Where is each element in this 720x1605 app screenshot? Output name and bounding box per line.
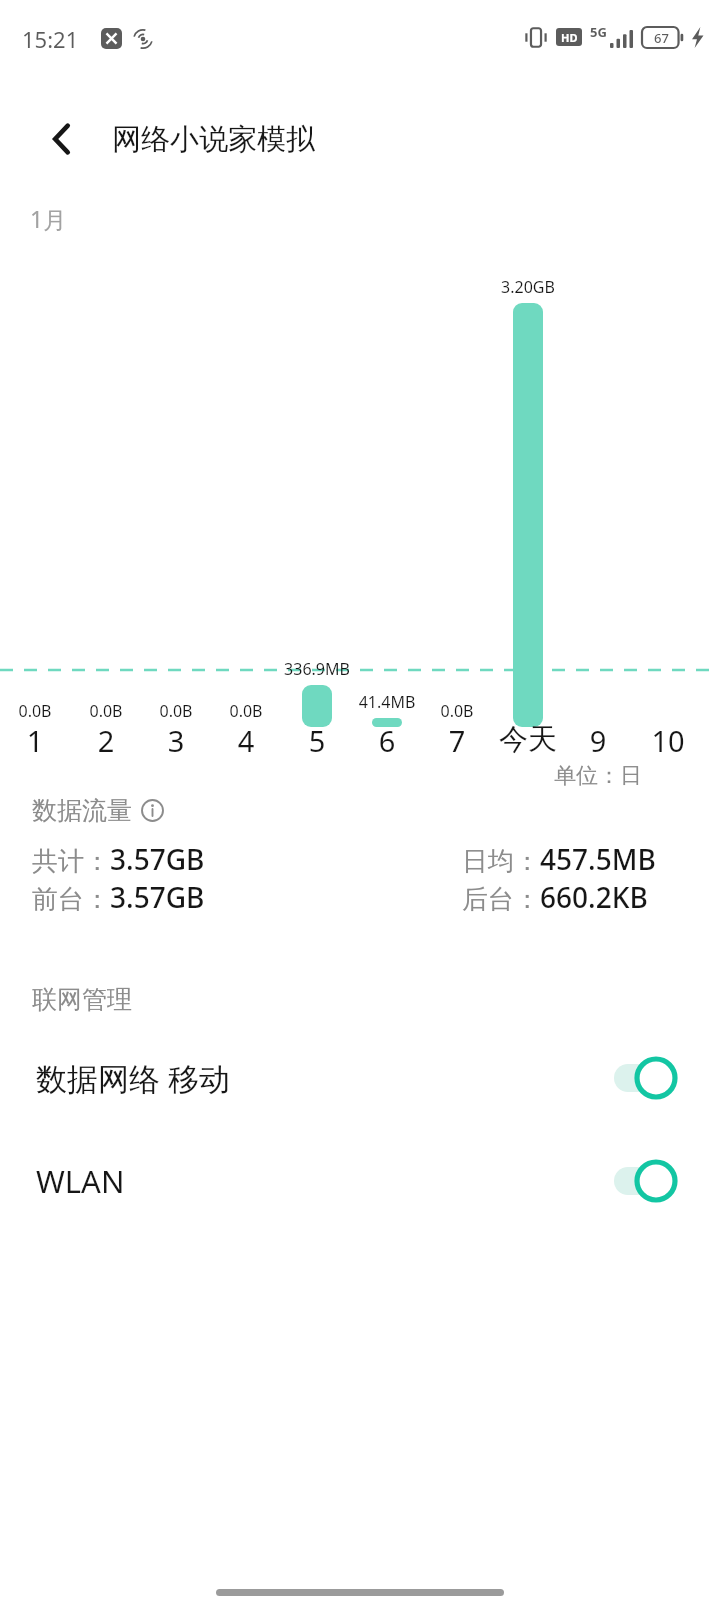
staticText: 5G [590,23,607,41]
staticText: 联网管理 [32,984,132,1015]
staticText: 3.20GB [458,276,598,298]
staticText: 0.0B [387,700,527,722]
staticText: 3.57GB [110,840,205,878]
staticText: 3 [121,721,231,760]
staticText: 共计： [32,845,110,878]
staticText: 4 [191,721,301,760]
staticText: 5 [262,721,372,760]
staticText: 后台： [462,883,540,916]
staticText: HD [561,30,578,45]
staticText: 1 [0,721,90,760]
button[interactable]: Back [26,103,98,175]
staticText: 7 [402,721,512,760]
staticText: 6 [332,721,442,760]
staticText: 0.0B [0,700,105,722]
staticText: 2 [51,721,161,760]
staticText: 10 [613,721,720,760]
staticText: 660.2KB [540,878,648,916]
staticText: 网络小说家模拟 [112,121,315,158]
staticText: 前台： [32,883,110,916]
staticText: 0.0B [176,700,316,722]
staticText: WLAN [36,1160,125,1202]
button[interactable]: 数据流量 [32,795,164,826]
staticText: 0.0B [106,700,246,722]
other: Info [141,799,164,822]
staticText: 今天 [473,721,583,758]
staticText: 457.5MB [540,840,656,878]
staticText: 1月 [30,203,67,234]
staticText: 67 [654,29,669,47]
staticText: 0.0B [36,700,176,722]
staticText: 3.57GB [110,878,205,916]
button[interactable]: WLAN [0,1139,720,1223]
staticText: 41.4MB [317,691,457,713]
staticText: 9 [543,721,653,760]
staticText: 数据网络 移动 [36,1057,231,1099]
staticText: 单位：日 [554,762,642,790]
button[interactable]: Toggle on [614,1157,678,1205]
button[interactable]: Toggle on [614,1054,678,1102]
button[interactable]: 数据网络 移动 [0,1036,720,1120]
staticText: 日均： [462,845,540,878]
staticText: 336.9MB [247,658,387,680]
staticText: 15:21 [22,24,79,54]
staticText: 数据流量 [32,795,132,826]
